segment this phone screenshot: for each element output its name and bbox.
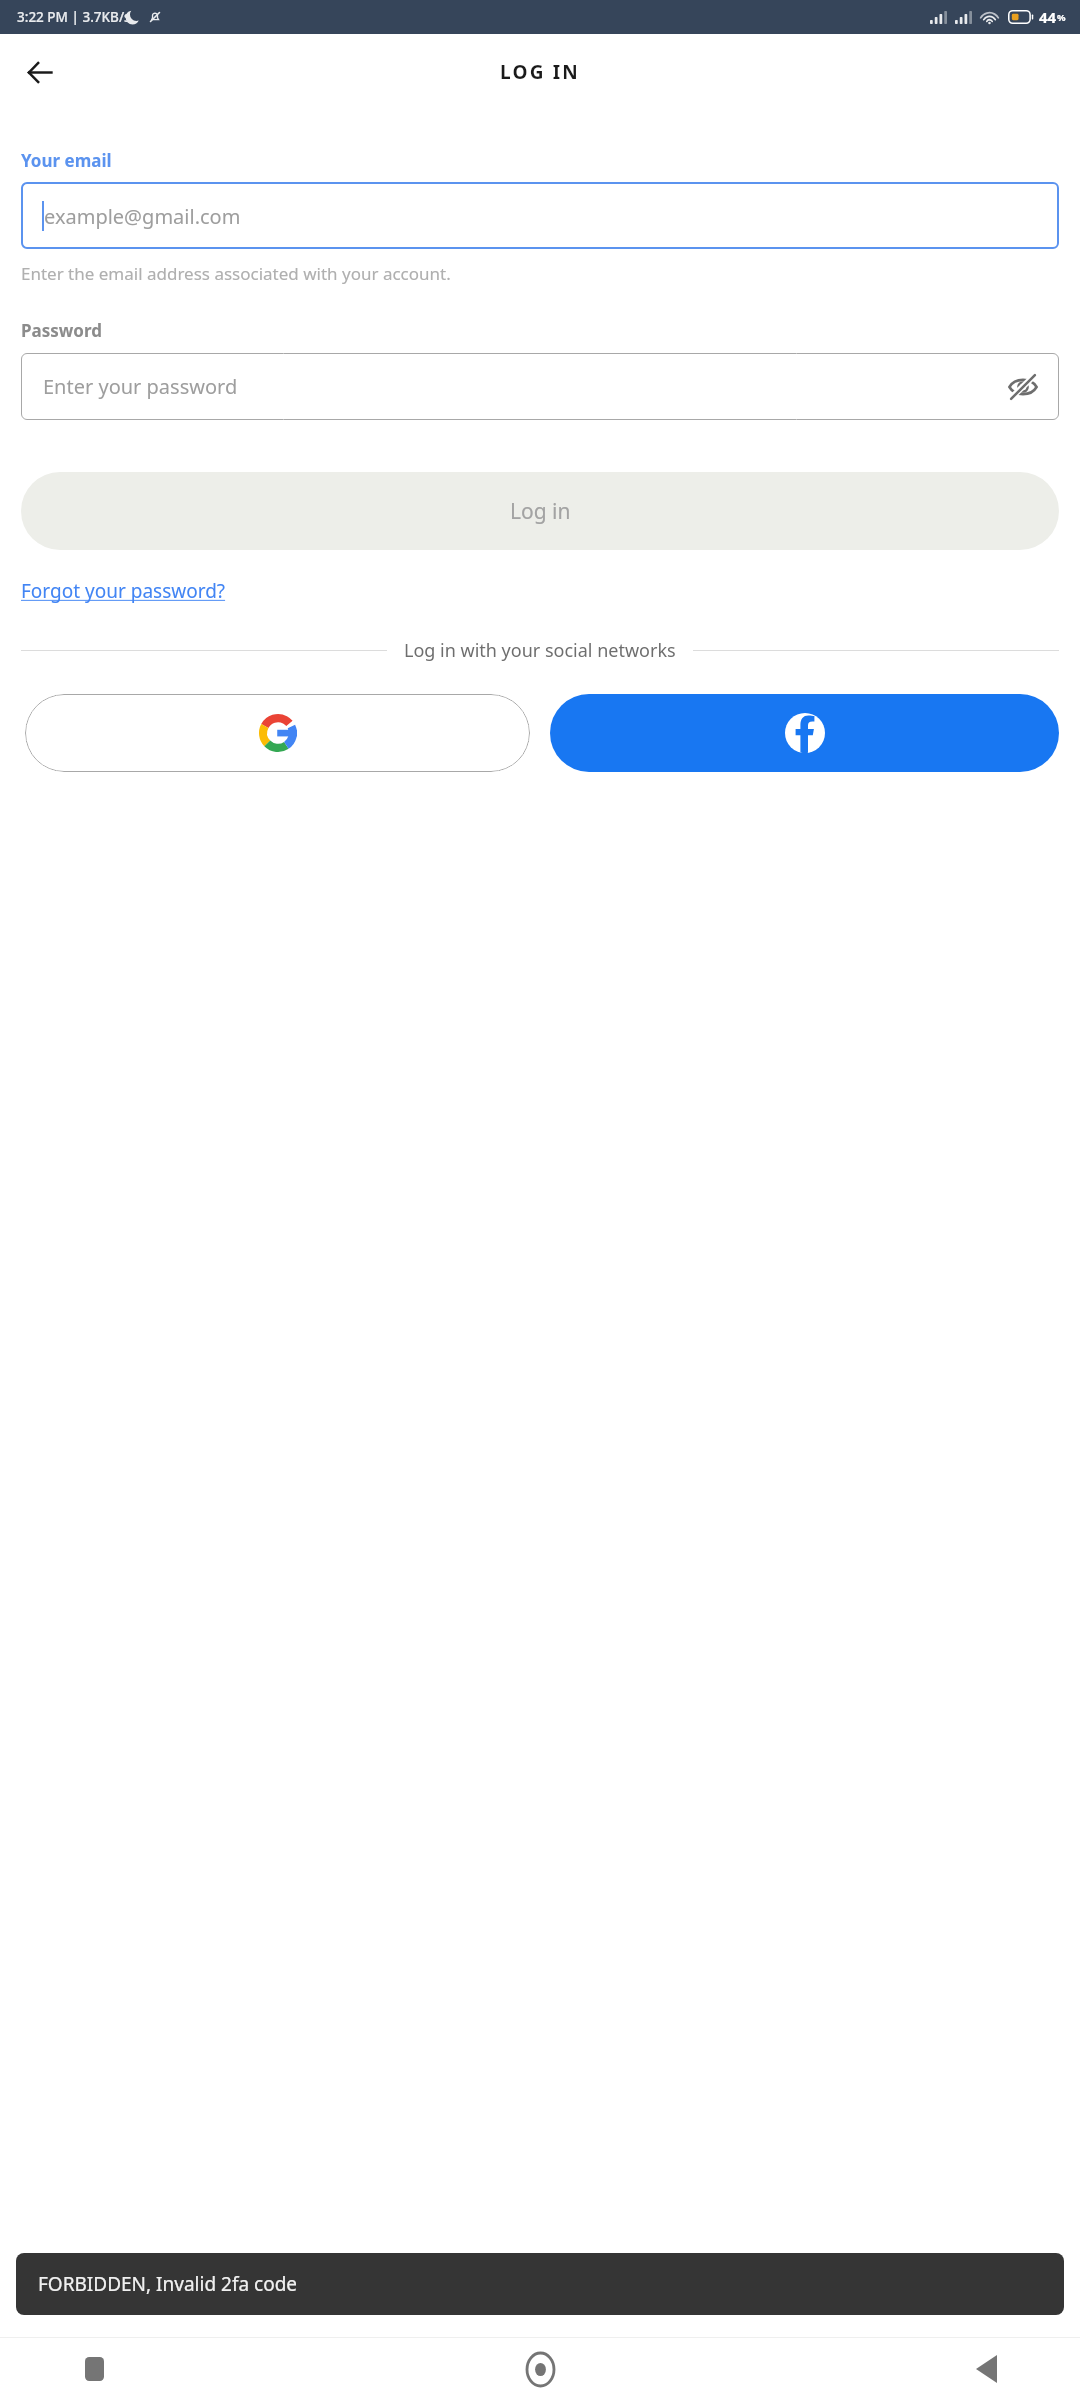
button[interactable]: Back — [958, 2341, 1014, 2397]
staticText: Enter the email address associated with … — [21, 262, 451, 285]
staticText: LOG IN — [500, 59, 581, 85]
staticText: 44 — [1039, 7, 1057, 27]
button[interactable]: Home — [512, 2341, 568, 2397]
button[interactable]: FORBIDDEN, Invalid 2fa code — [16, 2253, 1064, 2315]
button[interactable]: Forgot your password? — [21, 578, 226, 604]
button[interactable]: Recent apps — [66, 2341, 122, 2397]
staticText: example@gmail.com — [44, 203, 241, 230]
staticText: FORBIDDEN, Invalid 2fa code — [38, 2271, 298, 2297]
button[interactable]: Enter your password — [21, 353, 1059, 420]
button[interactable]: Log in — [21, 472, 1059, 550]
staticText: Log in — [510, 497, 571, 526]
button[interactable]: Back — [14, 46, 66, 98]
staticText: 3:22 PM | 3.7KB/s — [17, 8, 131, 26]
button[interactable]: Log in with Google — [25, 694, 530, 772]
staticText: Forgot your password? — [21, 578, 226, 604]
button[interactable]: example@gmail.com — [21, 182, 1059, 249]
staticText: Enter your password — [43, 373, 238, 400]
staticText: % — [1057, 11, 1066, 24]
staticText: Log in with your social networks — [404, 638, 676, 663]
button[interactable]: Log in with Facebook — [550, 694, 1059, 772]
staticText: Your email — [21, 149, 112, 172]
button[interactable]: Show password — [1001, 365, 1045, 409]
staticText: Password — [21, 319, 102, 342]
